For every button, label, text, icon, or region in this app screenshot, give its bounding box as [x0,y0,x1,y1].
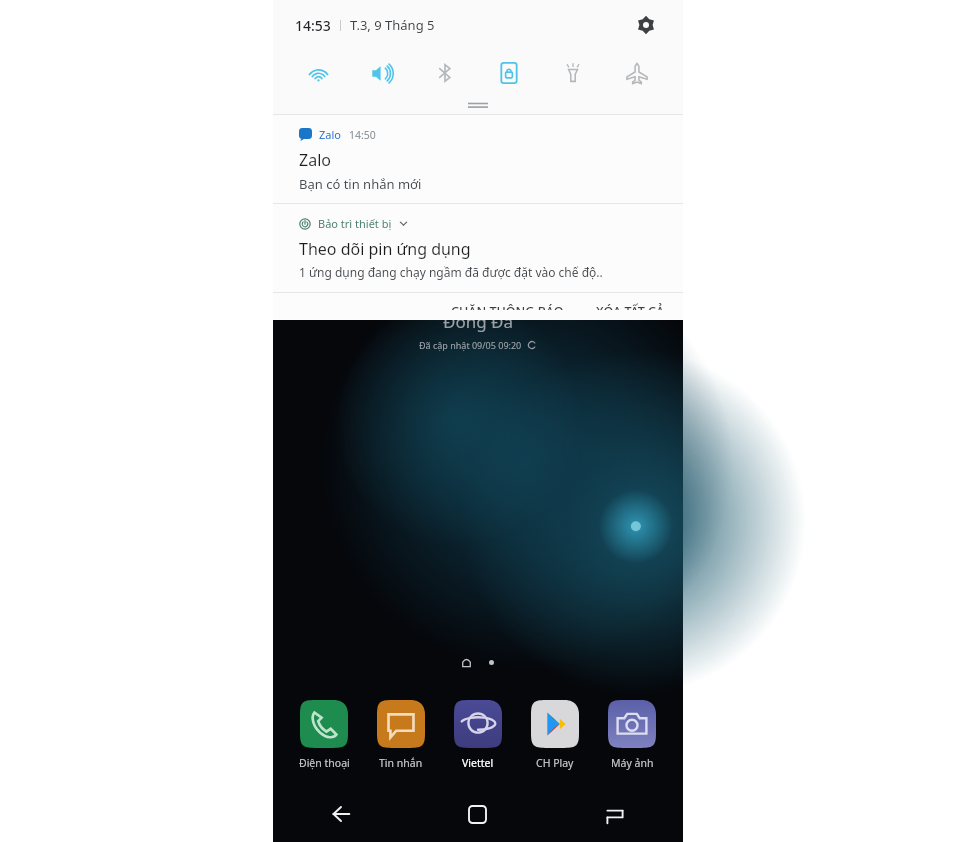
staticText: Viettel [462,756,494,770]
staticText: CH Play [536,756,574,770]
button[interactable]: Settings [631,10,661,40]
button[interactable]: Zalo [273,115,683,203]
button[interactable]: CHẶN THÔNG BÁO [439,293,576,320]
button[interactable]: Back [273,786,409,842]
staticText: 14:50 [349,128,376,142]
button[interactable]: CH Play [522,698,588,770]
staticText: T.3, 9 Tháng 5 [350,16,435,34]
staticText: Đã cập nhật 09/05 09:20 [419,339,522,351]
staticText: 14:53 [295,16,331,35]
staticText: CHẶN THÔNG BÁO [451,303,564,310]
staticText: Đống Đa [443,310,514,333]
button[interactable]: Điện thoại [291,698,357,770]
button[interactable]: Máy ảnh [599,698,665,770]
button[interactable]: Airplane mode [605,50,669,96]
staticText: 1 ứng dụng đang chạy ngầm đã được đặt và… [299,264,603,280]
staticText: Bạn có tin nhắn mới [299,175,422,193]
staticText: Máy ảnh [611,756,654,770]
button[interactable]: Tin nhắn [368,698,434,770]
staticText: Bảo trì thiết bị [318,216,392,231]
button[interactable]: Recents [546,786,683,842]
button[interactable]: Viettel [445,698,511,770]
button[interactable]: Flashlight [541,50,605,96]
staticText: XÓA TẤT CẢ [596,303,665,310]
button[interactable]: Wi-Fi [287,50,350,96]
staticText: Tin nhắn [379,756,423,770]
button[interactable]: Auto rotate lock [477,50,541,96]
button[interactable]: Bảo trì thiết bị [273,204,683,292]
button[interactable]: Sound [350,50,413,96]
staticText: Điện thoại [299,756,350,770]
staticText: Zalo [319,127,341,142]
button[interactable]: Home [409,786,546,842]
button[interactable]: XÓA TẤT CẢ [584,293,683,320]
staticText: Theo dõi pin ứng dụng [299,238,471,260]
button[interactable]: Bluetooth [413,50,477,96]
staticText: Zalo [299,149,331,171]
